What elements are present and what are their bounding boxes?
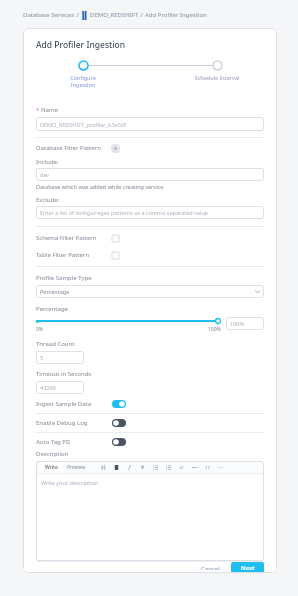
staticText: Timeout in Seconds [36,370,92,378]
staticText: Include: [36,158,59,166]
staticText: * [36,106,40,114]
button[interactable]: Bold [111,462,122,473]
staticText: Percentage [36,305,68,313]
staticText: 0% [36,326,44,333]
staticText: 43200 [40,384,56,391]
button[interactable]: More [215,462,226,473]
button[interactable]: DEMO_REDSHIFT [90,11,139,19]
staticText: Description [36,450,69,458]
button[interactable]: Divider [189,462,200,473]
button[interactable]: 43200 [36,381,84,394]
staticText: Cancel [201,565,220,570]
staticText: dev [40,171,50,178]
button[interactable]: Configure Ingestion [36,60,130,88]
button[interactable]: Auto Tag PII [36,438,264,446]
staticText: Exclude: [36,196,60,204]
staticText: Next [241,564,255,572]
staticText: Enable Debug Log [36,419,112,427]
staticText: Database Filter Pattern [36,144,112,152]
staticText: Table Filter Pattern [36,251,112,259]
button[interactable]: Next [231,562,264,573]
button[interactable]: Preview [63,462,89,473]
staticText: Profile Sample Type [36,274,92,282]
staticText: DEMO_REDSHIFT_profiler_b3e50f [40,121,126,128]
staticText: Thread Count [36,340,75,348]
staticText: Ingest Sample Data [36,400,112,408]
button[interactable]: Enable Debug Log [36,419,264,427]
button[interactable]: Database Filter Pattern [36,144,264,152]
staticText: Database which was added while creating … [36,183,164,190]
staticText: Add Profiler Ingestion [145,11,207,19]
staticText: Percentage [40,288,70,295]
button[interactable]: Database Services [23,11,75,19]
button[interactable]: Strikethrough [137,462,148,473]
button[interactable]: 5 [36,351,84,364]
staticText: Schema Filter Pattern [36,234,112,242]
button[interactable]: Cancel [195,562,226,573]
button[interactable]: Table Filter Pattern [36,251,264,259]
staticText: Write your description [41,479,99,486]
button[interactable]: DEMO_REDSHIFT_profiler_b3e50f [36,117,264,131]
button[interactable]: Schedule Interval [170,60,264,81]
staticText: / [75,11,81,19]
button[interactable]: Link [176,462,187,473]
staticText: 100% [230,320,245,327]
staticText: Preview [67,464,86,471]
staticText: 100% [208,326,221,333]
staticText: Add Profiler Ingestion [36,39,126,51]
button[interactable]: Ingest Sample Data [36,400,264,408]
staticText: Enter a list of strings/regex patterns a… [40,209,208,216]
staticText: Schedule Interval [170,74,264,81]
staticText: / [139,11,145,19]
button[interactable]: Code [202,462,213,473]
staticText: Auto Tag PII [36,438,112,446]
button[interactable]: Numbered list [163,462,174,473]
button[interactable]: dev [36,168,264,181]
staticText: Configure Ingestion [36,74,130,88]
button[interactable]: Italic [124,462,135,473]
button[interactable]: Percentage [36,285,264,298]
button[interactable]: Heading [98,462,109,473]
staticText: Write [45,464,58,471]
button[interactable]: Enter a list of strings/regex patterns a… [36,206,264,219]
staticText: Name [41,106,58,114]
staticText: 5 [40,354,44,361]
button[interactable]: Schema Filter Pattern [36,234,264,242]
button[interactable]: Write [39,462,63,473]
button[interactable]: 100% [226,317,264,330]
button[interactable]: Bulleted list [150,462,161,473]
